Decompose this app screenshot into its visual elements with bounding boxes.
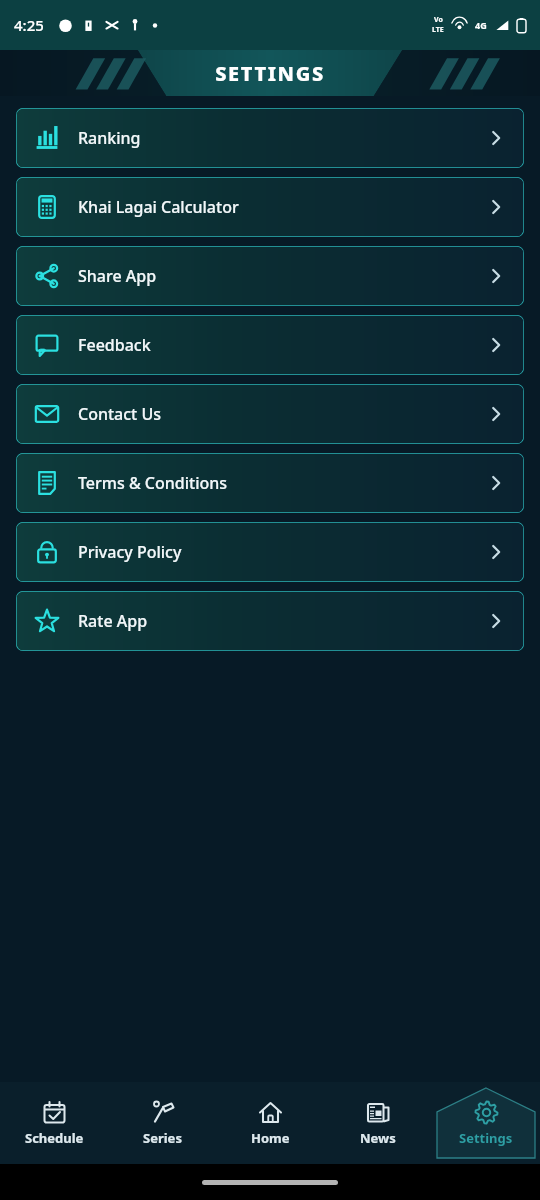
staticText: 4G (475, 19, 487, 31)
staticText: Rate App (78, 610, 148, 632)
staticText: Home (251, 1129, 290, 1147)
staticText: Share App (78, 265, 157, 287)
staticText: News (360, 1129, 396, 1147)
staticText: Settings (459, 1129, 513, 1147)
staticText: Series (143, 1129, 182, 1147)
button[interactable]: Feedback (16, 315, 524, 375)
button[interactable]: Share App (16, 246, 524, 306)
staticText: Terms & Conditions (78, 472, 228, 494)
button[interactable]: Contact Us (16, 384, 524, 444)
button[interactable]: Settings (432, 1082, 540, 1164)
staticText: Khai Lagai Calculator (78, 196, 239, 218)
staticText: Schedule (25, 1129, 84, 1147)
staticText: 4:25 (14, 15, 44, 35)
staticText: Ranking (78, 127, 141, 149)
staticText: LTE (432, 25, 444, 35)
button[interactable]: Terms & Conditions (16, 453, 524, 513)
staticText: Vo (434, 15, 443, 25)
button[interactable]: Privacy Policy (16, 522, 524, 582)
button[interactable]: Series (108, 1082, 216, 1164)
staticText: Contact Us (78, 403, 161, 425)
staticText: SETTINGS (215, 60, 325, 87)
button[interactable]: Ranking (16, 108, 524, 168)
button[interactable]: News (324, 1082, 432, 1164)
button[interactable]: Khai Lagai Calculator (16, 177, 524, 237)
staticText: Feedback (78, 334, 151, 356)
button[interactable]: Home (216, 1082, 324, 1164)
staticText: Privacy Policy (78, 541, 182, 563)
button[interactable]: Schedule (0, 1082, 108, 1164)
button[interactable]: Rate App (16, 591, 524, 651)
